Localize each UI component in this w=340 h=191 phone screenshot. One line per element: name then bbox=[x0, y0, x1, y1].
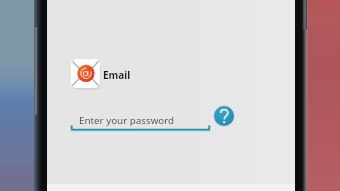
button[interactable]: Help bbox=[213, 105, 235, 127]
staticText: Enter your password bbox=[79, 114, 175, 127]
button[interactable]: Enter your password bbox=[71, 112, 210, 132]
staticText: Email bbox=[103, 68, 131, 82]
